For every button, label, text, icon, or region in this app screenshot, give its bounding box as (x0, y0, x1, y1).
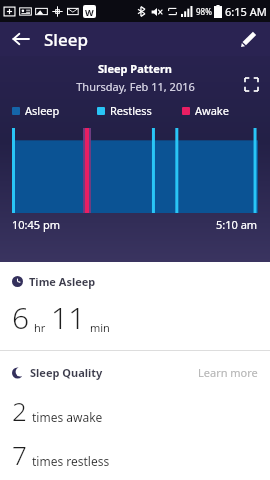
staticText: Restless (110, 103, 152, 118)
button[interactable]: Fullscreen (240, 73, 262, 95)
button[interactable]: Edit (236, 26, 262, 52)
staticText: times restless (32, 453, 110, 469)
staticText: Sleep Quality (30, 365, 103, 380)
staticText: 6:15 AM (225, 4, 267, 19)
staticText: 98% (196, 6, 212, 17)
button[interactable]: Back (8, 26, 34, 52)
staticText: min (90, 320, 110, 335)
staticText: Asleep (25, 103, 60, 118)
staticText: Time Asleep (29, 274, 96, 289)
staticText: Learn more (198, 365, 258, 380)
staticText: W (85, 6, 94, 18)
button[interactable]: Learn more (198, 365, 258, 380)
button[interactable]: Awake (182, 103, 258, 118)
staticText: 7 (12, 437, 27, 472)
staticText: hr (34, 320, 46, 335)
staticText: 5:10 am (216, 217, 258, 232)
staticText: Sleep (44, 28, 88, 51)
staticText: Sleep Pattern (98, 61, 172, 76)
staticText: Awake (195, 103, 229, 118)
staticText: 6 (12, 297, 30, 338)
staticText: 2 (12, 393, 27, 428)
staticText: 11 (51, 297, 86, 338)
staticText: 10:45 pm (12, 217, 61, 232)
staticText: times awake (32, 409, 103, 425)
button[interactable]: Asleep (12, 103, 97, 118)
staticText: Thursday, Feb 11, 2016 (76, 79, 195, 94)
button[interactable]: Restless (97, 103, 182, 118)
